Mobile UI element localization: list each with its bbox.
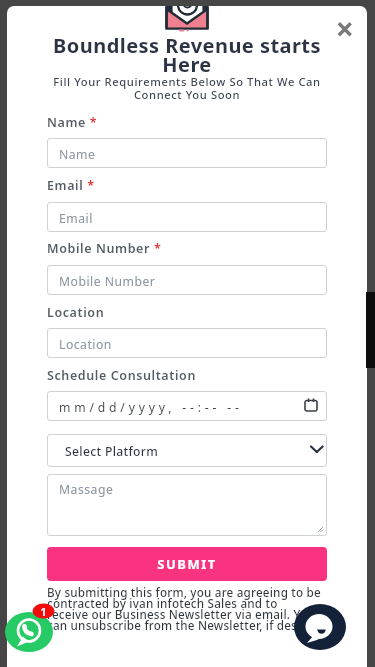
staticText: Mobile Number — [59, 273, 156, 290]
staticText: Email * — [47, 177, 95, 194]
staticText: mm/dd/yyyy, --:-- -- — [59, 399, 243, 416]
staticText: SUBMIT — [47, 555, 327, 573]
staticText: Email — [59, 210, 93, 227]
staticText: 1 — [40, 604, 47, 620]
staticText: Name * — [47, 114, 98, 131]
staticText: Name — [59, 146, 96, 163]
staticText: Location — [59, 336, 112, 353]
staticText: Select Platform — [65, 443, 159, 460]
staticText: Location — [47, 304, 105, 321]
staticText: Boundless Revenue starts Here — [7, 32, 367, 77]
staticText: Massage — [59, 481, 114, 498]
staticText: Fill Your Requirements Below So That We … — [7, 74, 367, 102]
staticText: Mobile Number * — [47, 240, 162, 257]
staticText: Schedule Consultation — [47, 367, 196, 384]
staticText: By submitting this form, you are agreein… — [47, 584, 342, 633]
